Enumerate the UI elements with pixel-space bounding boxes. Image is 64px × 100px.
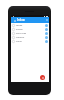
button[interactable]: Drafts xyxy=(11,27,49,31)
staticText: Trash xyxy=(16,40,22,43)
staticText: Drafts xyxy=(16,28,23,31)
button[interactable]: Trash xyxy=(11,39,49,43)
button[interactable]: Compose xyxy=(40,75,45,80)
button[interactable]: Menu xyxy=(11,17,49,23)
staticText: Inbox xyxy=(17,18,25,22)
button[interactable]: Outbox xyxy=(11,35,49,39)
button[interactable]: Inbox xyxy=(11,23,49,27)
staticText: Outbox xyxy=(16,36,25,39)
button[interactable]: Menu xyxy=(13,19,16,22)
staticText: Inbox xyxy=(16,24,23,27)
staticText: Sent mail xyxy=(16,32,27,35)
button[interactable]: Sent mail xyxy=(11,31,49,35)
